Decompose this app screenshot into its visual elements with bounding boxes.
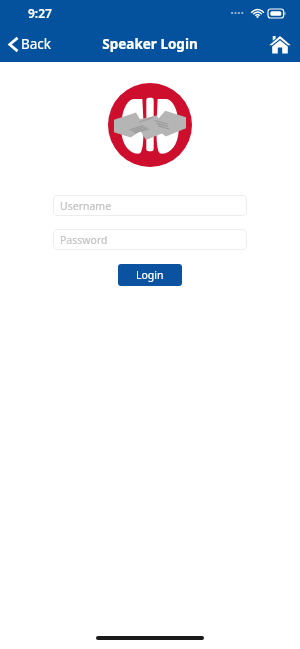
staticText: Username: [60, 199, 112, 213]
button[interactable]: Password: [53, 229, 247, 250]
button[interactable]: Username: [53, 195, 247, 216]
button[interactable]: Back: [0, 26, 62, 62]
staticText: Password: [60, 233, 108, 247]
staticText: Speaker Login: [102, 35, 198, 53]
staticText: 9:27: [28, 5, 52, 21]
button[interactable]: Login: [118, 264, 182, 286]
button[interactable]: Home: [260, 26, 300, 62]
staticText: Login: [136, 268, 164, 282]
staticText: Back: [21, 35, 52, 53]
